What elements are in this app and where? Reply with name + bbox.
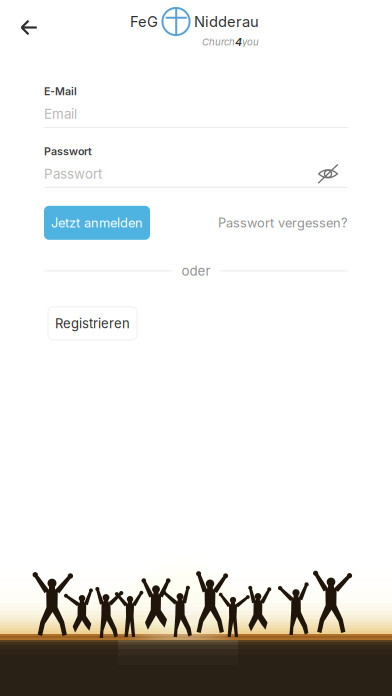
staticText: Passwort (44, 166, 102, 182)
staticText: 4 (235, 35, 242, 48)
staticText: Passwort (44, 145, 92, 158)
staticText: Church (202, 36, 235, 48)
staticText: E-Mail (44, 85, 77, 98)
staticText: oder (181, 263, 210, 279)
staticText: Registrieren (55, 315, 130, 331)
staticText: Passwort vergessen? (218, 215, 348, 231)
button[interactable]: Back (7, 5, 51, 49)
staticText: FeG (130, 13, 158, 30)
staticText: you (242, 36, 259, 48)
button[interactable]: Registrieren (48, 307, 137, 340)
staticText: Nidderau (194, 13, 259, 30)
staticText: Email (44, 106, 77, 122)
button[interactable]: Jetzt anmelden (44, 206, 150, 240)
button[interactable]: Passwort vergessen? (218, 215, 348, 231)
button[interactable]: Show password (313, 161, 348, 187)
staticText: Jetzt anmelden (51, 215, 143, 231)
